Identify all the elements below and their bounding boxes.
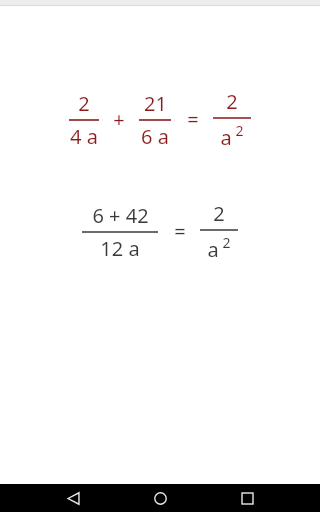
staticText: a [207,236,219,263]
staticText: 12 a [100,235,140,262]
staticText: 2 [235,121,244,140]
button[interactable]: Recent apps [233,484,261,512]
staticText: a [220,124,232,151]
staticText: 21 [144,90,167,117]
staticText: 2 [226,88,238,115]
staticText: 2 [213,200,225,227]
staticText: = [187,106,199,133]
button[interactable]: Back [59,484,87,512]
staticText: 6 + 42 [92,202,149,229]
staticText: 2 [78,90,90,117]
button[interactable]: Home [146,484,174,512]
staticText: 4 a [70,123,98,150]
staticText: 2 [222,233,231,252]
staticText: 6 a [141,123,169,150]
staticText: + [113,106,125,133]
staticText: = [174,218,186,245]
